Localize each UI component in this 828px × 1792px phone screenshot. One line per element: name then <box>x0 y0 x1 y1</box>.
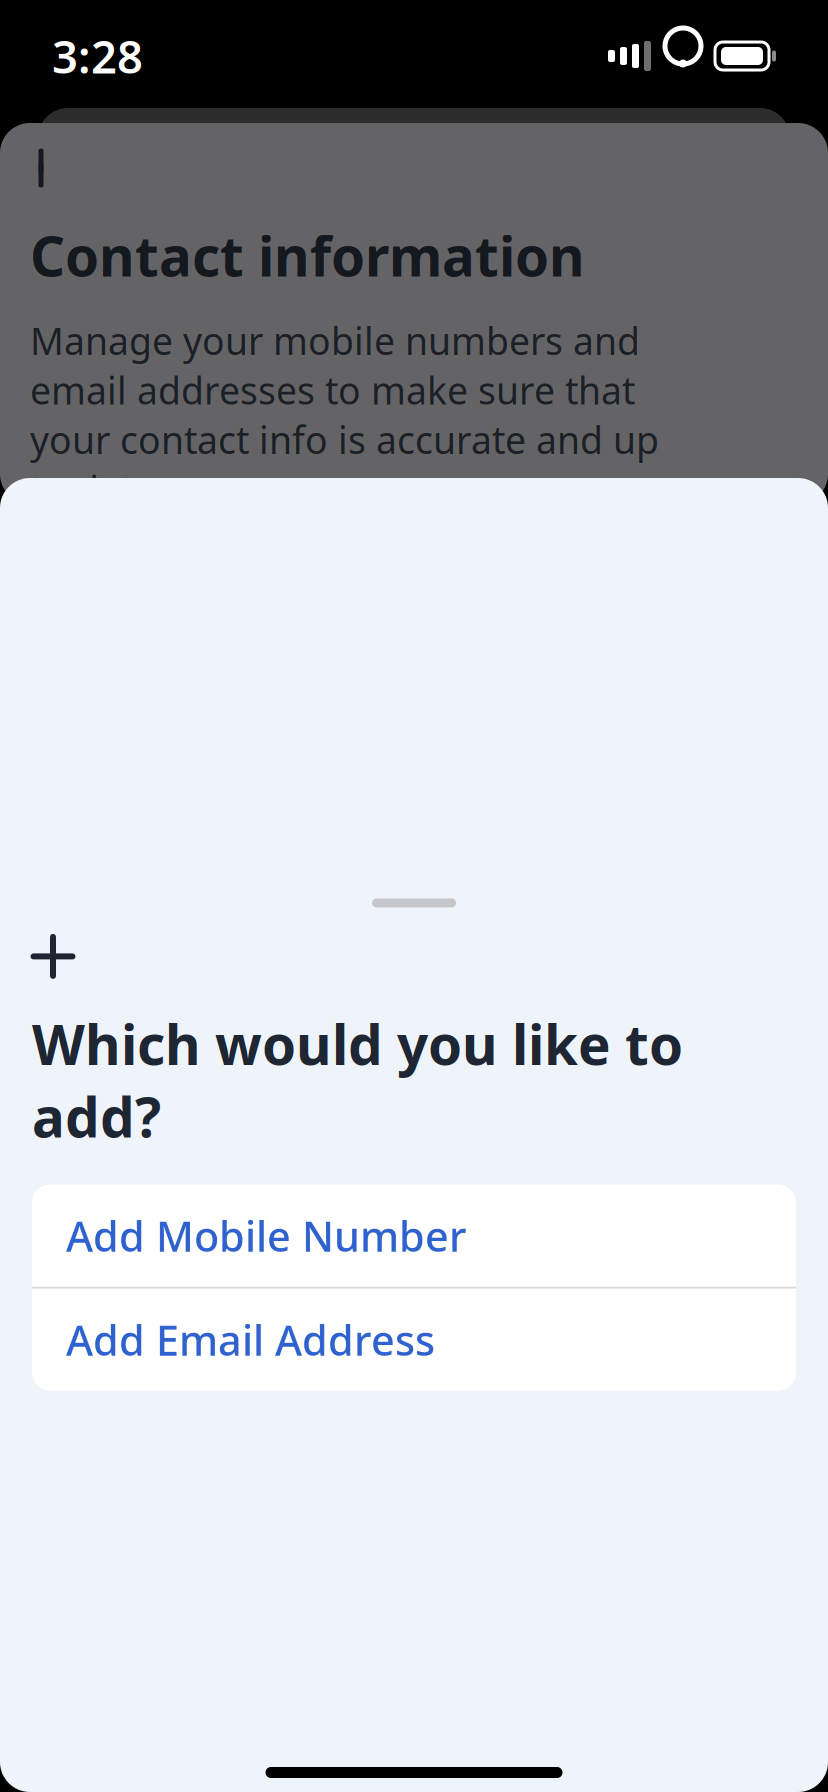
staticText: 3:28 <box>52 26 143 86</box>
staticText: Add Email Address <box>66 1312 435 1367</box>
staticText: Add Mobile Number <box>66 1208 466 1263</box>
button[interactable]: Add Mobile Number <box>32 1185 796 1287</box>
staticText: Which would you like to add? <box>32 1007 683 1153</box>
staticText: Contact information <box>30 219 585 292</box>
button[interactable]: Add Email Address <box>32 1289 796 1391</box>
button[interactable]: Close <box>32 925 104 987</box>
staticText: Manage your mobile numbers and email add… <box>30 316 659 514</box>
button[interactable]: Back <box>8 137 84 199</box>
